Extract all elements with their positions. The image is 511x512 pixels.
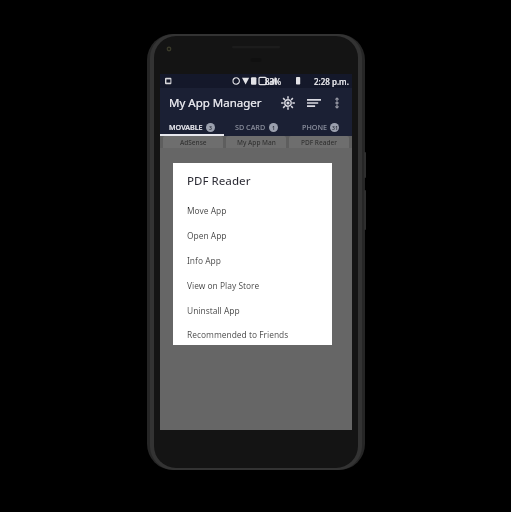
staticText: 31 xyxy=(332,124,338,131)
staticText: 3 xyxy=(209,124,212,131)
button[interactable]: Info App xyxy=(173,248,332,273)
staticText: Info App xyxy=(187,255,221,266)
staticText: 1 xyxy=(272,124,275,131)
staticText: My App Man xyxy=(237,138,276,147)
staticText: Move App xyxy=(187,205,227,216)
button[interactable]: PDF Reader xyxy=(289,136,349,148)
button[interactable]: My App Man xyxy=(226,136,286,148)
button[interactable]: View on Play Store xyxy=(173,273,332,298)
staticText: AdSense xyxy=(180,138,207,147)
staticText: Open App xyxy=(187,230,227,241)
button[interactable]: Move App xyxy=(173,198,332,223)
button[interactable]: Sort xyxy=(303,92,325,114)
staticText: PDF Reader xyxy=(187,173,251,189)
button[interactable]: Uninstall App xyxy=(173,298,332,323)
staticText: My App Manager xyxy=(169,95,262,111)
button[interactable]: More options xyxy=(327,93,347,113)
staticText: 2:28 p.m. xyxy=(314,76,349,87)
staticText: Recommended to Friends xyxy=(187,329,289,340)
button[interactable]: Theme xyxy=(277,92,299,114)
staticText: PHONE xyxy=(302,122,327,132)
button[interactable]: AdSense xyxy=(163,136,223,148)
button[interactable]: SD CARD xyxy=(224,118,288,136)
staticText: Uninstall App xyxy=(187,305,240,316)
staticText: 83% xyxy=(265,76,281,87)
button[interactable]: Recommended to Friends xyxy=(173,323,332,345)
button[interactable]: MOVABLE xyxy=(160,118,224,136)
staticText: MOVABLE xyxy=(169,122,203,132)
button[interactable]: Open App xyxy=(173,223,332,248)
button[interactable]: PHONE xyxy=(288,118,352,136)
staticText: SD CARD xyxy=(235,122,266,132)
staticText: View on Play Store xyxy=(187,280,260,291)
staticText: PDF Reader xyxy=(301,138,337,147)
